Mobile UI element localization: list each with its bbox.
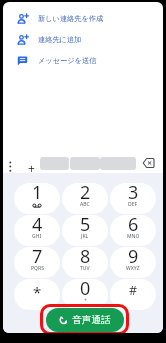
staticText: 5 xyxy=(80,215,91,237)
staticText: 音声通話 xyxy=(72,314,111,326)
staticText: 3 xyxy=(128,183,139,205)
staticText: 1 xyxy=(32,183,43,205)
staticText: 0 xyxy=(80,279,91,301)
staticText: DEF xyxy=(128,201,138,208)
button[interactable]: 0 xyxy=(62,279,108,310)
staticText: 8 xyxy=(80,247,91,269)
staticText: 連絡先に追加 xyxy=(38,35,82,44)
staticText: * xyxy=(33,282,42,302)
staticText: WXYZ xyxy=(126,265,140,272)
button[interactable]: 7 xyxy=(14,247,60,278)
button[interactable]: 2 xyxy=(62,183,108,214)
button[interactable]: 6 xyxy=(110,215,156,246)
button[interactable]: 4 xyxy=(14,215,60,246)
button[interactable]: 3 xyxy=(110,183,156,214)
button[interactable]: メッセージを送信 xyxy=(3,50,163,71)
staticText: 2 xyxy=(80,183,91,205)
staticText: MNO xyxy=(127,233,140,240)
staticText: + xyxy=(84,297,87,304)
button[interactable]: 1 xyxy=(14,183,60,214)
staticText: 9 xyxy=(128,247,139,269)
staticText: 6 xyxy=(128,215,139,237)
staticText: PQRS xyxy=(31,265,44,272)
button[interactable]: 音声通話 xyxy=(46,308,124,332)
staticText: 新しい連絡先を作成 xyxy=(38,14,104,23)
button[interactable] xyxy=(142,157,155,169)
button[interactable]: * xyxy=(14,279,60,310)
staticText: JKL xyxy=(81,233,89,240)
button[interactable]: 8 xyxy=(62,247,108,278)
staticText: 7 xyxy=(32,247,43,269)
button[interactable]: 連絡先に追加 xyxy=(3,29,163,50)
staticText: ABC xyxy=(80,201,90,208)
button[interactable] xyxy=(7,160,15,174)
button[interactable]: 5 xyxy=(62,215,108,246)
staticText: TUV xyxy=(80,265,90,272)
staticText: 4 xyxy=(32,215,43,237)
staticText: GHI xyxy=(32,233,42,240)
staticText: + xyxy=(28,160,35,176)
button[interactable]: 新しい連絡先を作成 xyxy=(3,8,163,29)
button[interactable]: 9 xyxy=(110,247,156,278)
staticText: メッセージを送信 xyxy=(38,56,97,65)
staticText: # xyxy=(129,282,138,299)
button[interactable]: # xyxy=(110,279,156,310)
